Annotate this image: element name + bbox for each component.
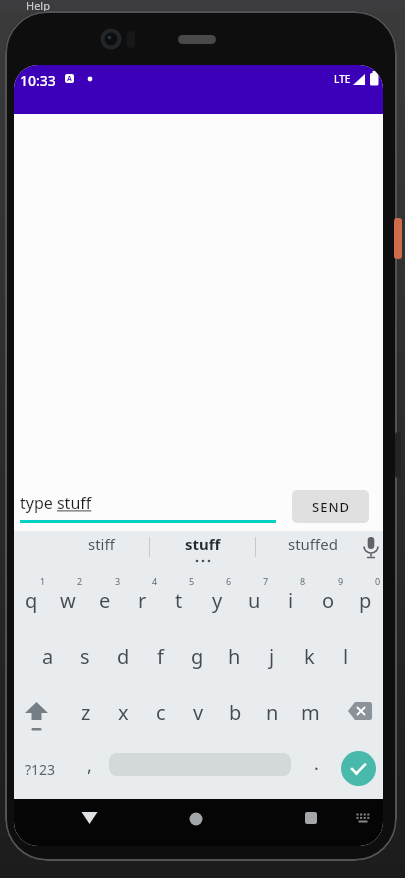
staticText: 10:33: [20, 71, 56, 90]
button[interactable]: s: [67, 633, 103, 679]
staticText: i: [288, 587, 294, 614]
staticText: A: [67, 74, 72, 83]
staticText: .: [314, 751, 319, 775]
staticText: 0: [375, 575, 381, 587]
button[interactable]: h: [216, 633, 252, 679]
staticText: v: [193, 699, 204, 726]
button[interactable]: i: [273, 577, 309, 623]
button[interactable]: k: [291, 633, 327, 679]
button[interactable]: f: [142, 633, 178, 679]
staticText: h: [228, 643, 241, 670]
button[interactable]: p: [347, 577, 383, 623]
staticText: s: [80, 643, 90, 670]
button[interactable]: m: [292, 689, 328, 735]
button[interactable]: ,: [59, 753, 119, 777]
button[interactable]: stuff: [173, 532, 233, 556]
staticText: stiff: [88, 534, 115, 554]
button[interactable]: b: [217, 689, 253, 735]
button[interactable]: [25, 702, 49, 734]
staticText: LTE: [334, 72, 351, 86]
staticText: 6: [226, 575, 232, 587]
staticText: 2: [77, 575, 83, 587]
staticText: ?123: [25, 760, 56, 779]
staticText: f: [157, 643, 164, 670]
button[interactable]: .: [286, 751, 346, 775]
staticText: j: [269, 643, 275, 670]
staticText: 1: [40, 575, 46, 587]
button[interactable]: o: [310, 577, 346, 623]
button[interactable]: w: [50, 577, 86, 623]
staticText: w: [60, 587, 76, 614]
staticText: 4: [152, 575, 158, 587]
staticText: 7: [263, 575, 269, 587]
button[interactable]: d: [105, 633, 141, 679]
button[interactable]: l: [328, 633, 364, 679]
staticText: x: [118, 699, 129, 726]
staticText: stuff: [185, 534, 221, 554]
button[interactable]: g: [179, 633, 215, 679]
button[interactable]: j: [254, 633, 290, 679]
staticText: 3: [115, 575, 121, 587]
staticText: Help: [26, 0, 50, 13]
staticText: n: [266, 699, 279, 726]
staticText: 8: [300, 575, 306, 587]
button[interactable]: e: [87, 577, 123, 623]
staticText: q: [25, 587, 38, 614]
staticText: e: [99, 587, 111, 614]
button[interactable]: [362, 537, 380, 560]
staticText: c: [156, 699, 166, 726]
button[interactable]: [348, 702, 373, 721]
button[interactable]: stiff: [71, 532, 131, 556]
button[interactable]: r: [124, 577, 160, 623]
button[interactable]: Help: [26, 0, 66, 13]
button[interactable]: type stuff: [20, 486, 282, 520]
staticText: 9: [338, 575, 344, 587]
staticText: l: [343, 643, 349, 670]
button[interactable]: c: [143, 689, 179, 735]
button[interactable]: v: [180, 689, 216, 735]
staticText: stuffed: [288, 534, 338, 554]
staticText: SEND: [312, 498, 350, 516]
button[interactable]: u: [236, 577, 272, 623]
staticText: p: [359, 587, 372, 614]
staticText: r: [138, 587, 147, 614]
button[interactable]: [356, 813, 370, 825]
staticText: d: [117, 643, 130, 670]
button[interactable]: [189, 812, 203, 826]
button[interactable]: z: [68, 689, 104, 735]
button[interactable]: q: [14, 577, 49, 623]
staticText: b: [229, 699, 242, 726]
button[interactable]: [305, 812, 317, 824]
button[interactable]: [81, 811, 98, 825]
staticText: k: [304, 643, 315, 670]
staticText: o: [322, 587, 335, 614]
button[interactable]: a: [30, 633, 66, 679]
staticText: g: [191, 643, 204, 670]
button[interactable]: n: [254, 689, 290, 735]
button[interactable]: x: [105, 689, 141, 735]
staticText: t: [175, 587, 183, 614]
staticText: u: [248, 587, 261, 614]
staticText: type stuff: [20, 492, 92, 514]
button[interactable]: stuffed: [283, 532, 343, 556]
staticText: 5: [189, 575, 195, 587]
staticText: m: [301, 699, 320, 726]
staticText: y: [212, 587, 223, 614]
staticText: z: [81, 699, 91, 726]
staticText: a: [42, 643, 54, 670]
button[interactable]: [341, 751, 376, 786]
button[interactable]: ?123: [14, 757, 70, 781]
button[interactable]: SEND: [292, 490, 369, 523]
staticText: ,: [87, 753, 92, 777]
button[interactable]: y: [199, 577, 235, 623]
button[interactable]: t: [161, 577, 197, 623]
